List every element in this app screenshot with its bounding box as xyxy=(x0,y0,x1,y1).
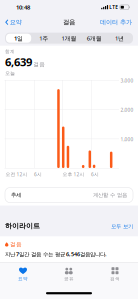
staticText: 2,000 xyxy=(120,107,133,113)
button[interactable]: 1개월 xyxy=(56,34,82,43)
staticText: 6시 xyxy=(34,171,42,177)
staticText: 공유 xyxy=(64,276,74,282)
button[interactable]: 6개월 xyxy=(82,34,107,43)
button[interactable]: 1년 xyxy=(107,34,132,43)
staticText: 10:48 xyxy=(16,3,30,11)
staticText: 요약 xyxy=(10,18,22,26)
button[interactable]: 걸음 xyxy=(0,236,138,262)
staticText: 요약 xyxy=(18,276,28,282)
button[interactable]: 요약 xyxy=(0,15,26,30)
staticText: 하이라이트 xyxy=(5,222,40,230)
button[interactable]: 공유 xyxy=(46,267,92,282)
button[interactable]: 1일 xyxy=(6,34,31,43)
staticText: 추세 xyxy=(11,192,21,198)
staticText: 걸음 xyxy=(10,241,22,248)
staticText: 6시 xyxy=(91,171,99,177)
staticText: 지난 7일간 걸음 수는 평균 6,546걸음입니다. xyxy=(5,250,107,258)
staticText: 모두 보기 xyxy=(111,223,133,230)
button[interactable]: 추세 xyxy=(0,188,138,203)
staticText: 검색 xyxy=(110,276,120,282)
staticText: 오늘 xyxy=(5,70,15,77)
button[interactable]: 검색 xyxy=(92,267,138,282)
staticText: 오전 12시 xyxy=(5,171,27,177)
staticText: 1년 xyxy=(115,34,124,42)
staticText: 1개월 xyxy=(61,34,76,42)
staticText: 합계 xyxy=(5,49,15,54)
button[interactable]: 요약 xyxy=(0,267,46,282)
staticText: LTE xyxy=(109,4,118,10)
button[interactable]: 모두 보기 xyxy=(111,223,133,230)
staticText: 1일 xyxy=(14,34,23,42)
staticText: 걸음 xyxy=(33,61,45,68)
staticText: 오후 12시 xyxy=(62,171,84,177)
button[interactable]: 데이터 추가 xyxy=(96,15,138,30)
staticText: 6,639 xyxy=(5,54,32,70)
staticText: 3,000 xyxy=(120,77,133,84)
staticText: 데이터 추가 xyxy=(100,18,132,26)
staticText: 6개월 xyxy=(87,34,102,42)
staticText: 계산할 수 없음 xyxy=(93,192,127,198)
staticText: 1,000 xyxy=(120,136,133,142)
staticText: 걸음 xyxy=(63,18,75,26)
staticText: 1주 xyxy=(39,34,48,42)
button[interactable]: 1주 xyxy=(31,34,56,43)
